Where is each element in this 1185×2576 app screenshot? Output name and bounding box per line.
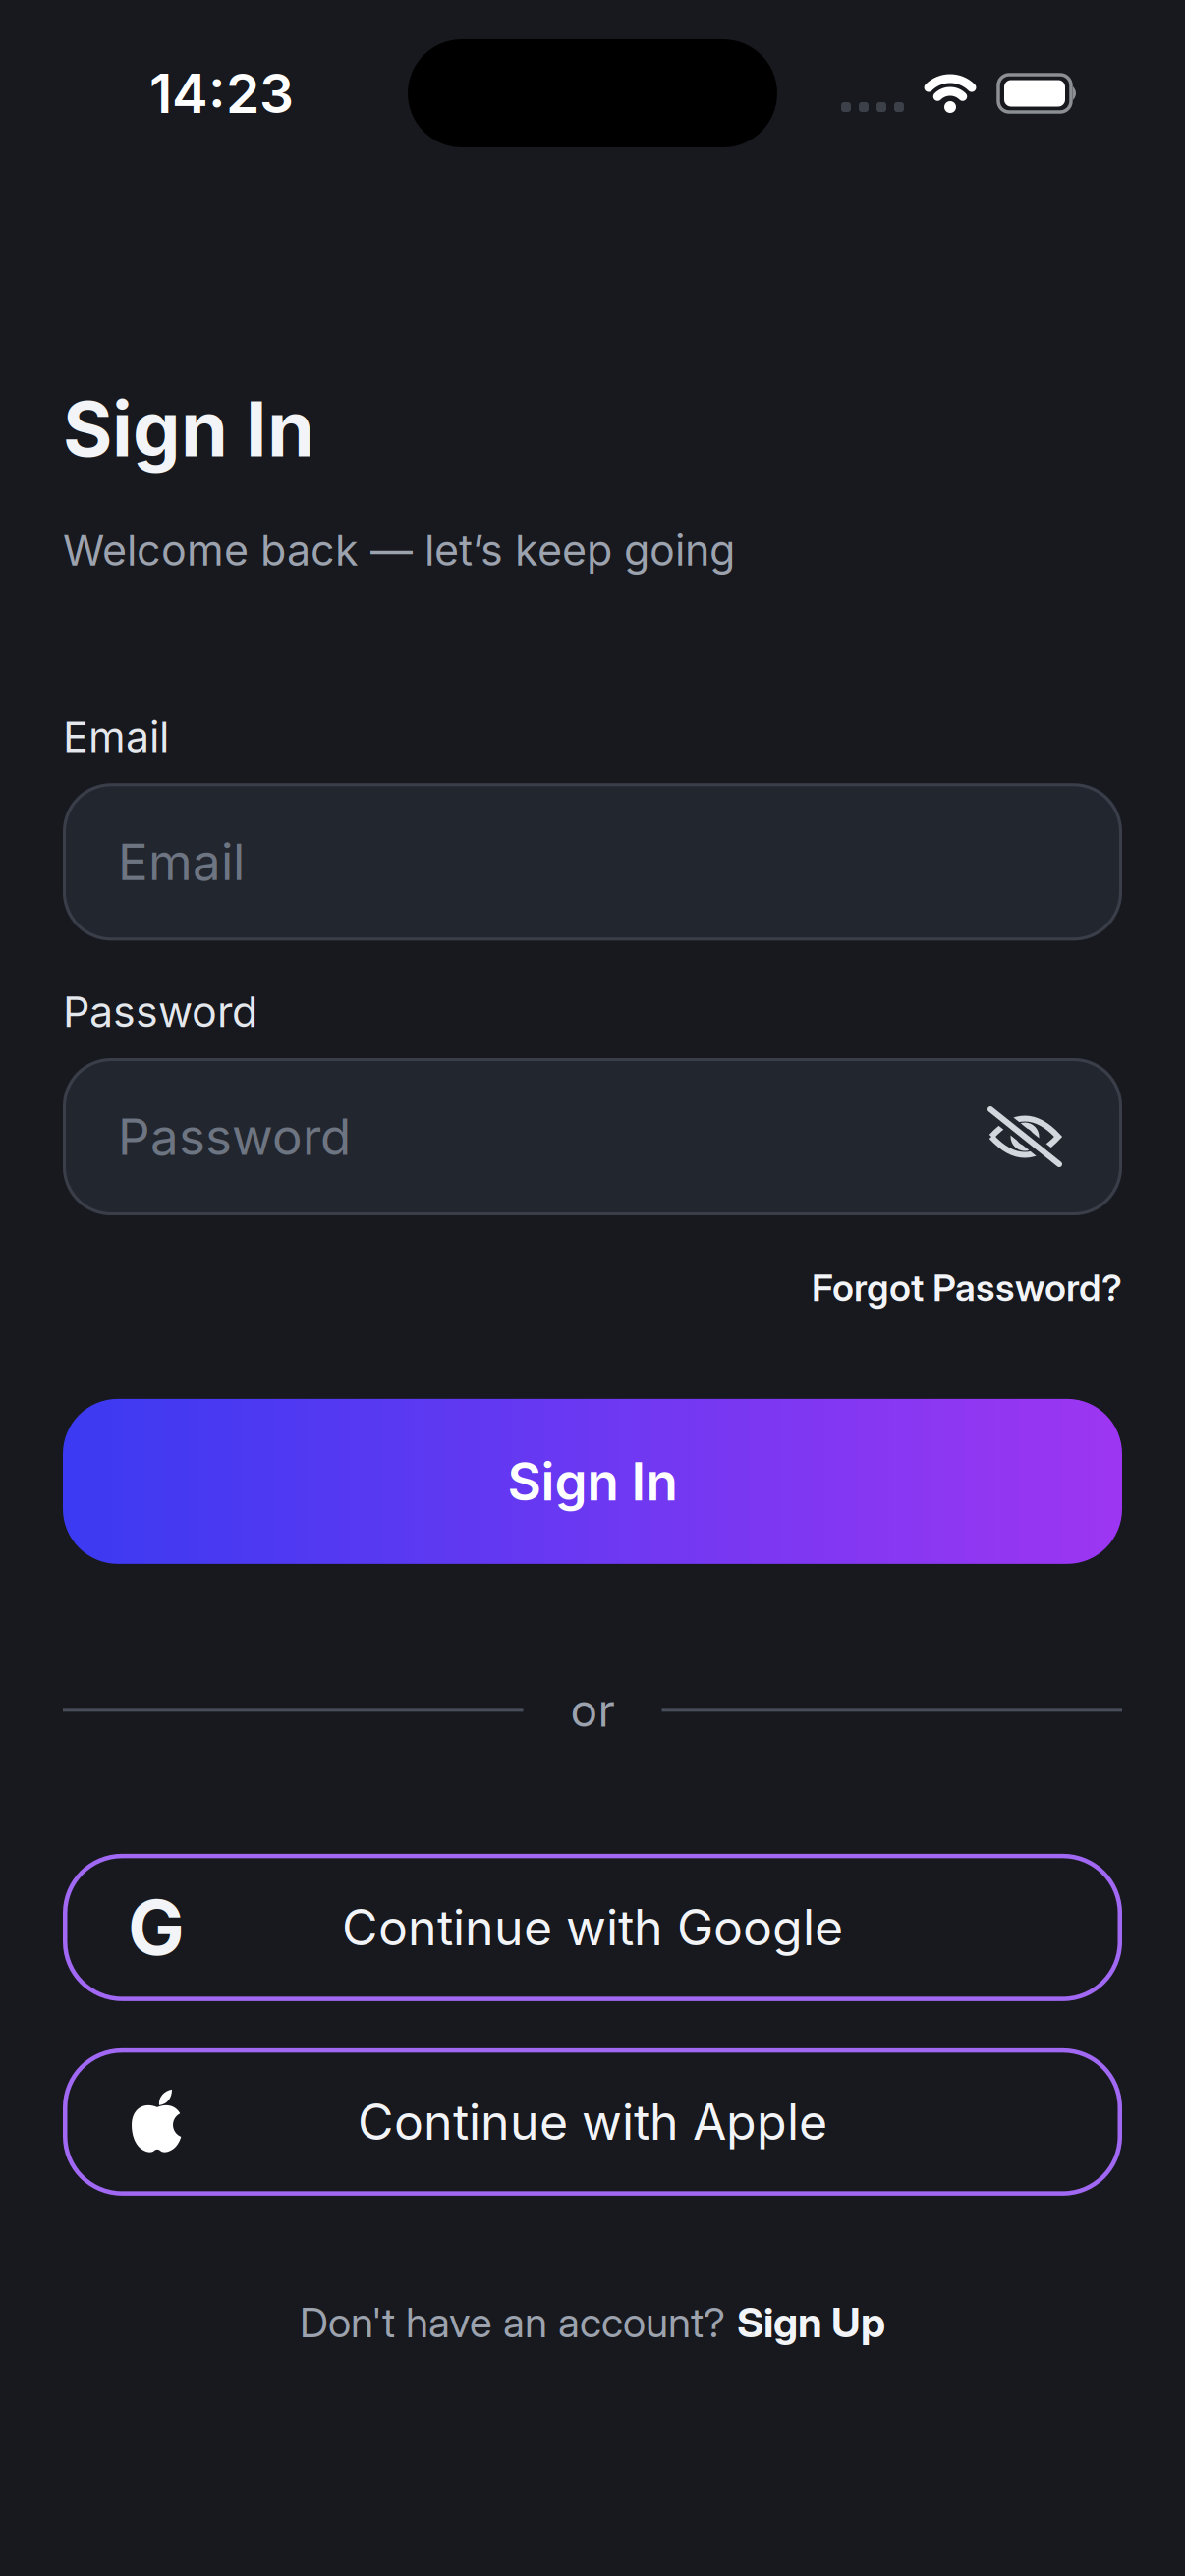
button[interactable]: Password <box>63 1058 1122 1215</box>
staticText: Forgot Password? <box>812 1265 1122 1309</box>
button[interactable]: Continue with Google <box>63 1854 1122 2001</box>
staticText: Don't have an account? <box>300 2298 725 2346</box>
staticText: Continue with Google <box>342 1898 843 1956</box>
staticText: 14:23 <box>149 62 294 125</box>
staticText: Welcome back — let’s keep going <box>63 525 735 575</box>
button[interactable]: Don't have an account? <box>300 2298 885 2346</box>
staticText: G <box>128 1883 185 1972</box>
staticText: Continue with Apple <box>358 2093 827 2151</box>
button[interactable]: Continue with Apple <box>63 2048 1122 2196</box>
staticText: Sign In <box>508 1451 677 1512</box>
staticText: Email <box>118 832 245 891</box>
staticText: or <box>570 1684 615 1737</box>
button[interactable]: Sign In <box>63 1399 1122 1564</box>
staticText: Password <box>118 1107 351 1166</box>
staticText: Email <box>63 712 169 762</box>
staticText: Sign In <box>63 384 314 473</box>
button[interactable] <box>988 1109 1061 1164</box>
staticText: Password <box>63 987 257 1036</box>
button[interactable]: Forgot Password? <box>812 1265 1122 1309</box>
staticText: Sign Up <box>737 2298 885 2346</box>
button[interactable]: Email <box>63 783 1122 941</box>
